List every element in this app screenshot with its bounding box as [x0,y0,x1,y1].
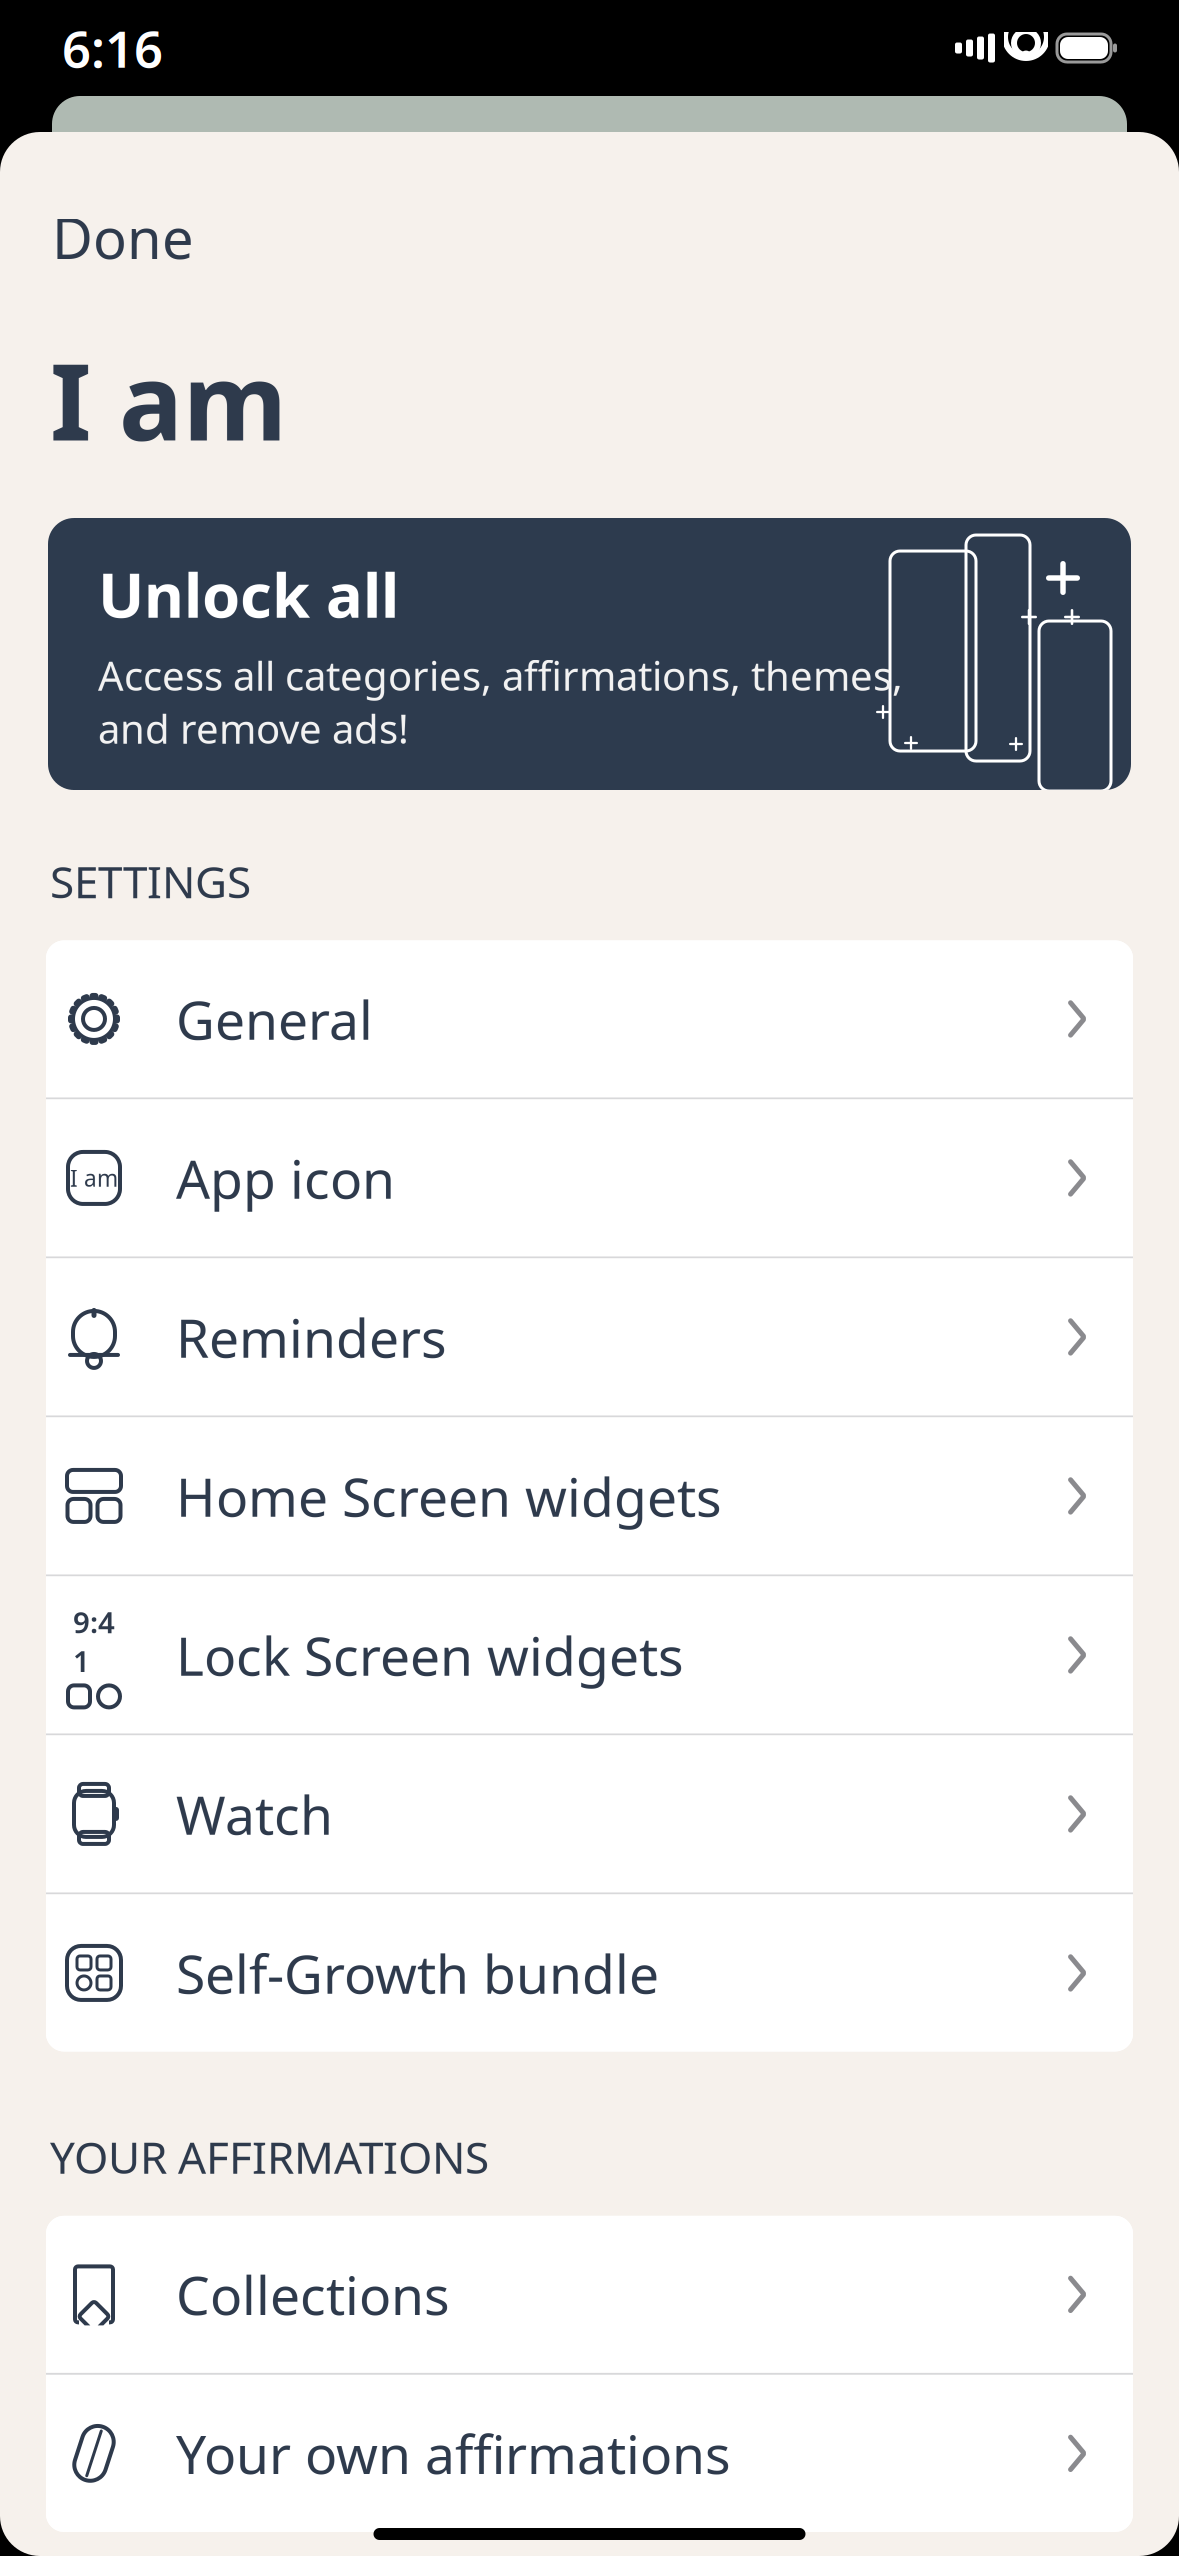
button[interactable]: Unlock all [48,518,1131,790]
staticText: Reminders [176,1301,447,1372]
staticText: Lock Screen widgets [176,1619,684,1690]
staticText: YOUR AFFIRMATIONS [50,2127,489,2186]
staticText: I am [50,328,287,470]
staticText: Access all categories, affirmations, the… [98,649,903,755]
button[interactable]: General [46,940,1133,1099]
button[interactable]: 9:41 [46,1576,1133,1735]
staticText: Self-Growth bundle [176,1937,659,2008]
staticText: Done [52,200,194,274]
button[interactable]: Reminders [46,1258,1133,1417]
staticText: Collections [176,2259,450,2330]
staticText: Home Screen widgets [176,1460,722,1531]
button[interactable]: Home Screen widgets [46,1417,1133,1576]
staticText: 9:41 [73,1602,115,1680]
button[interactable]: Watch [46,1735,1133,1894]
staticText: Watch [176,1778,333,1849]
button[interactable]: Your own affirmations [46,2375,1133,2532]
button[interactable]: Self-Growth bundle [46,1894,1133,2051]
staticText: Unlock all [98,553,399,635]
button[interactable]: I am [46,1099,1133,1258]
staticText: SETTINGS [50,852,251,910]
staticText: I am [70,1163,118,1193]
staticText: 6:16 [62,14,163,82]
button[interactable]: Collections [46,2216,1133,2375]
staticText: General [176,983,373,1054]
staticText: Your own affirmations [176,2418,731,2489]
button[interactable]: Done [48,190,198,284]
staticText: App icon [176,1142,395,1213]
